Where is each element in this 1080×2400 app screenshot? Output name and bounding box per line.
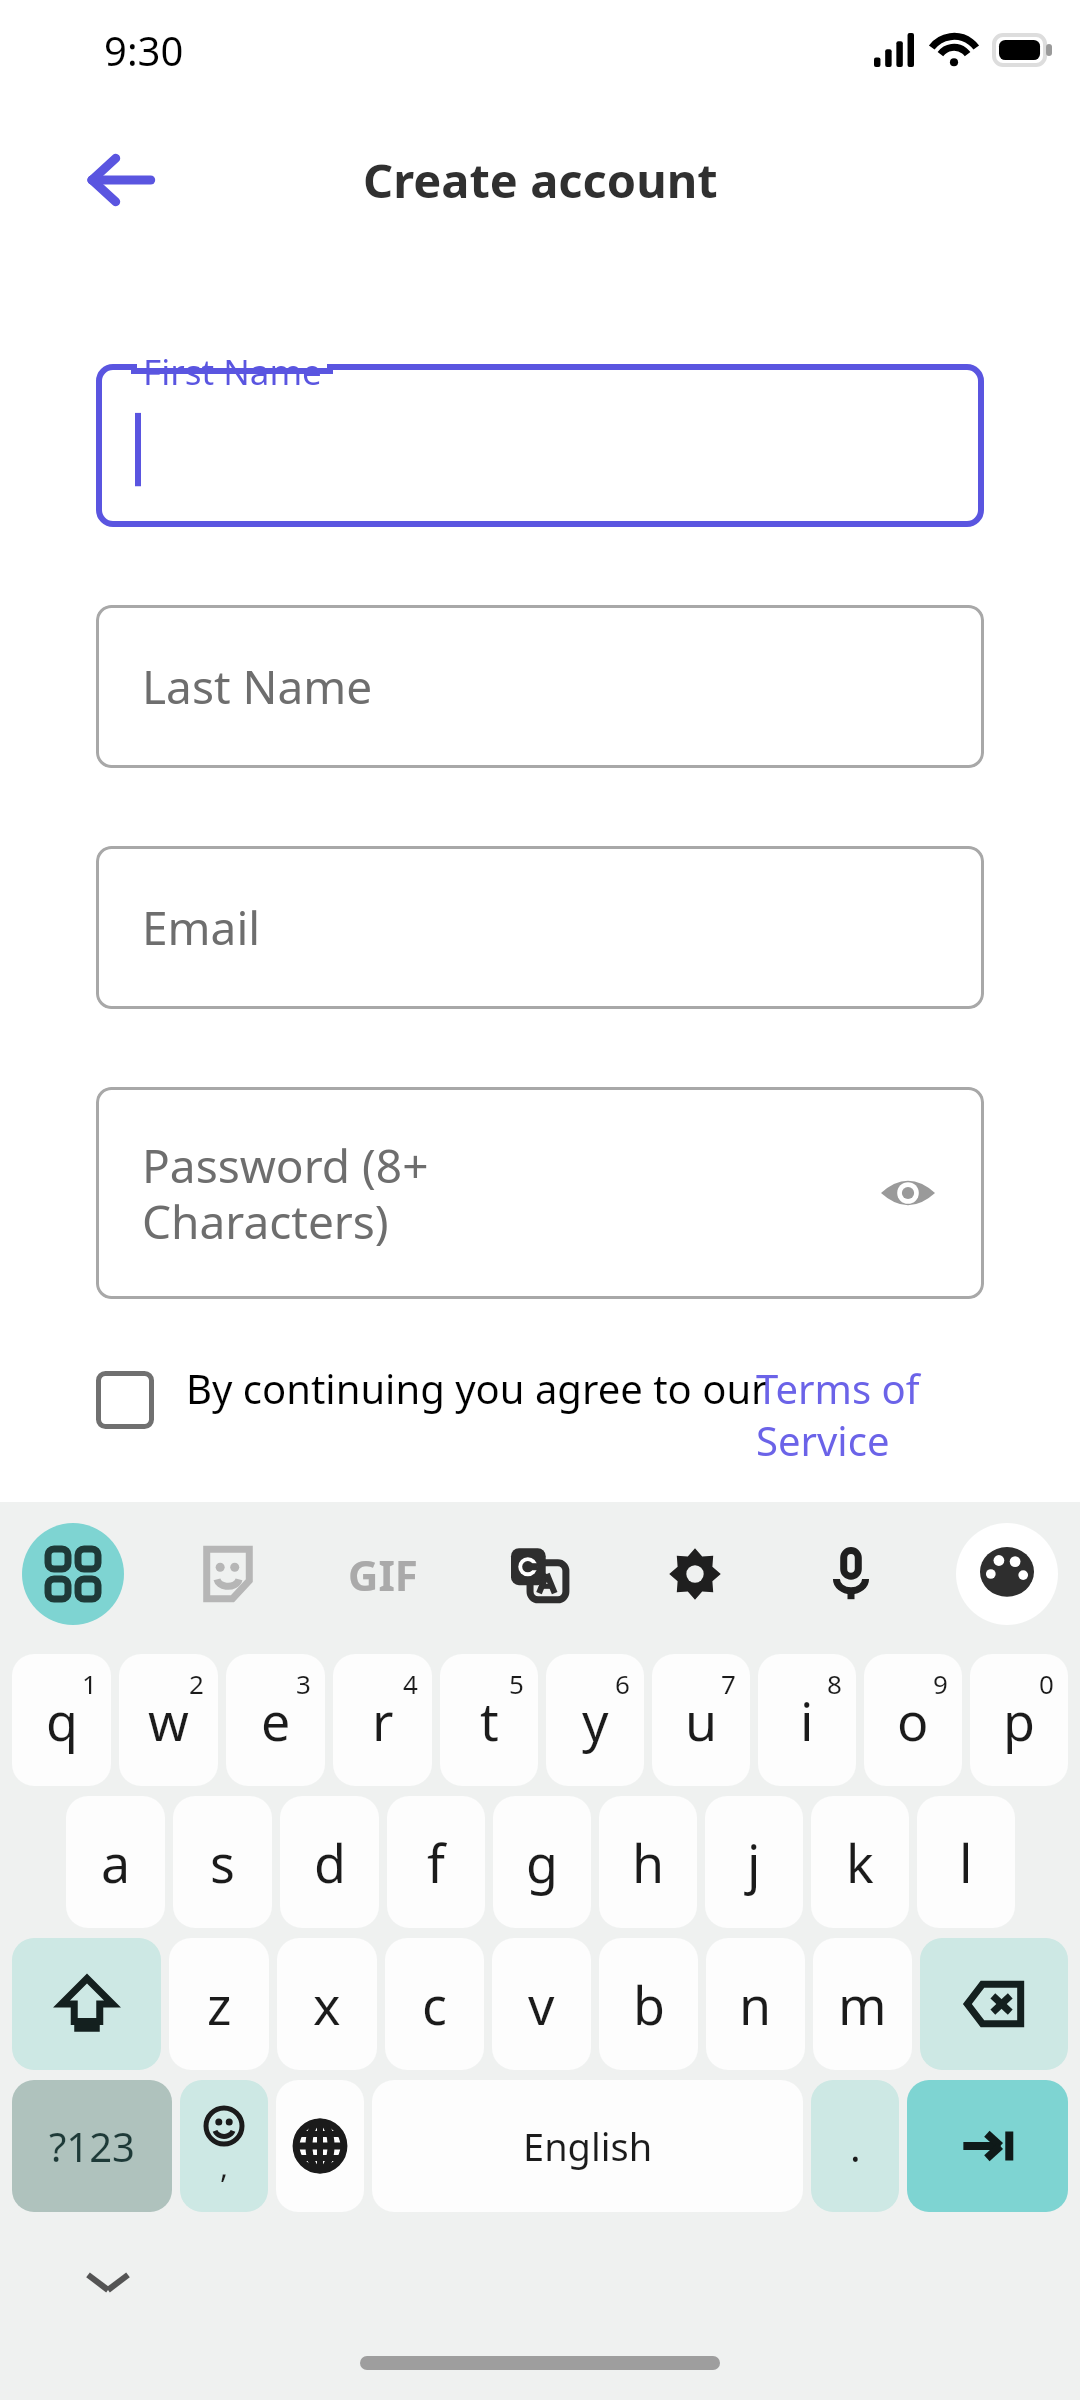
button[interactable]: j (705, 1796, 803, 1928)
staticText: Create account (363, 148, 718, 212)
staticText: 9:30 (104, 23, 184, 77)
button[interactable]: t (440, 1654, 538, 1786)
staticText: Password (8+ Characters) (142, 1134, 429, 1252)
staticText: g (526, 1827, 558, 1898)
button[interactable]: s (173, 1796, 272, 1928)
button[interactable]: y (546, 1654, 644, 1786)
staticText: Email (142, 896, 261, 959)
staticText: ?123 (49, 2119, 135, 2173)
staticText: s (210, 1827, 235, 1898)
button[interactable]: v (492, 1938, 591, 2070)
button[interactable]: Agree to terms (96, 1371, 154, 1429)
staticText: t (480, 1685, 499, 1756)
button[interactable]: i (758, 1654, 856, 1786)
button[interactable]: w (119, 1654, 218, 1786)
button[interactable]: o (864, 1654, 962, 1786)
button[interactable]: Backspace (920, 1938, 1068, 2070)
staticText: c (422, 1969, 447, 2040)
button[interactable]: English (372, 2080, 803, 2212)
staticText: 4 (403, 1666, 418, 1701)
staticText: 1 (82, 1666, 97, 1701)
button[interactable]: Theme (956, 1523, 1058, 1625)
button[interactable]: q (12, 1654, 111, 1786)
staticText: j (747, 1827, 761, 1898)
staticText: f (427, 1827, 445, 1898)
button[interactable]: e (226, 1654, 325, 1786)
button[interactable]: Back (74, 133, 168, 227)
staticText: p (1003, 1685, 1035, 1756)
staticText: r (372, 1685, 394, 1756)
staticText: 5 (509, 1666, 524, 1701)
button[interactable]: c (385, 1938, 484, 2070)
staticText: y (582, 1685, 609, 1756)
button[interactable]: g (493, 1796, 591, 1928)
button[interactable]: k (811, 1796, 909, 1928)
button[interactable]: Emoji (180, 2080, 268, 2212)
button[interactable]: x (277, 1938, 377, 2070)
button[interactable]: z (169, 1938, 269, 2070)
button[interactable]: p (970, 1654, 1068, 1786)
button[interactable]: b (599, 1938, 698, 2070)
staticText: b (633, 1969, 665, 2040)
staticText: 8 (827, 1666, 842, 1701)
staticText: i (800, 1685, 814, 1756)
staticText: By continuing you agree to our (186, 1361, 779, 1415)
staticText: a (101, 1827, 131, 1898)
staticText: English (523, 2120, 653, 2172)
staticText: d (314, 1827, 346, 1898)
button[interactable]: r (333, 1654, 432, 1786)
staticText: z (207, 1969, 232, 2040)
staticText: 6 (615, 1666, 630, 1701)
button[interactable]: Password (8+ Characters) (96, 1087, 984, 1299)
staticText: Last Name (142, 655, 373, 718)
button[interactable]: Stickers (177, 1523, 279, 1625)
staticText: Terms of Service (756, 1361, 920, 1468)
staticText: 7 (721, 1666, 736, 1701)
button[interactable]: Translate (488, 1523, 590, 1625)
button[interactable]: h (599, 1796, 697, 1928)
button[interactable]: Change language (276, 2080, 364, 2212)
button[interactable]: u (652, 1654, 750, 1786)
button[interactable]: Hide keyboard (70, 2244, 146, 2320)
staticText: x (313, 1969, 341, 2040)
button[interactable]: a (66, 1796, 165, 1928)
staticText: 9 (933, 1666, 948, 1701)
button[interactable]: Show password (868, 1153, 948, 1233)
staticText: o (897, 1685, 929, 1756)
staticText: u (685, 1685, 718, 1756)
button[interactable]: Shift (12, 1938, 161, 2070)
staticText: , (220, 2146, 229, 2187)
staticText: 0 (1039, 1666, 1054, 1701)
button[interactable]: . (811, 2080, 899, 2212)
staticText: 2 (189, 1666, 204, 1701)
staticText: First Name (143, 348, 322, 396)
staticText: v (528, 1969, 555, 2040)
button[interactable]: Email (96, 846, 984, 1009)
button[interactable]: Voice input (800, 1523, 902, 1625)
button[interactable]: n (706, 1938, 805, 2070)
button[interactable]: ?123 (12, 2080, 172, 2212)
staticText: . (850, 2119, 861, 2173)
button[interactable]: GIF (332, 1523, 434, 1625)
button[interactable]: Keyboard modes (22, 1523, 124, 1625)
staticText: m (838, 1969, 887, 2040)
staticText: w (148, 1685, 189, 1756)
staticText: q (46, 1685, 78, 1756)
staticText: k (846, 1827, 874, 1898)
staticText: e (261, 1685, 291, 1756)
staticText: n (739, 1969, 772, 2040)
button[interactable]: f (387, 1796, 485, 1928)
button[interactable]: Next (907, 2080, 1068, 2212)
button[interactable]: d (280, 1796, 379, 1928)
staticText: l (959, 1827, 973, 1898)
staticText: GIF (348, 1546, 418, 1603)
staticText: 3 (296, 1666, 311, 1701)
button[interactable]: Settings (644, 1523, 746, 1625)
button[interactable]: First Name (96, 364, 984, 527)
button[interactable]: l (917, 1796, 1015, 1928)
button[interactable]: Last Name (96, 605, 984, 768)
staticText: h (632, 1827, 665, 1898)
button[interactable]: m (813, 1938, 912, 2070)
